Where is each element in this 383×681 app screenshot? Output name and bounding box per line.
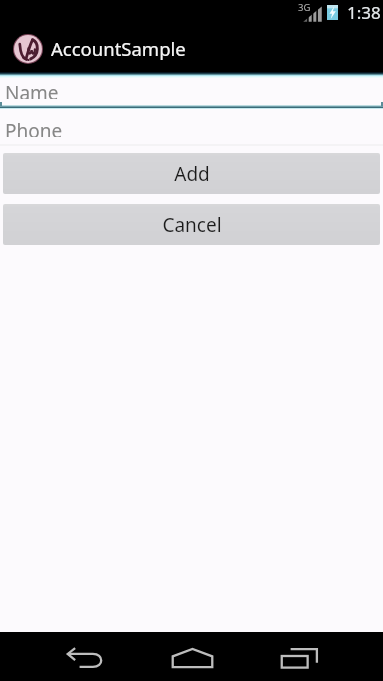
staticText: 1:38 xyxy=(347,1,381,24)
button[interactable]: Recent apps xyxy=(267,633,331,681)
button[interactable]: Add xyxy=(3,153,380,194)
button[interactable]: Cancel xyxy=(3,204,380,245)
staticText: Name xyxy=(5,80,59,99)
staticText: Add xyxy=(174,161,210,187)
staticText: AccountSample xyxy=(51,36,186,61)
button[interactable]: Name xyxy=(0,80,383,110)
staticText: Cancel xyxy=(162,212,222,238)
staticText: Phone xyxy=(5,118,63,137)
button[interactable]: Back xyxy=(53,633,117,681)
button[interactable]: Phone xyxy=(0,118,383,148)
button[interactable]: AccountSample xyxy=(0,25,383,72)
staticText: 3G xyxy=(298,1,311,14)
button[interactable]: Home xyxy=(160,633,224,681)
